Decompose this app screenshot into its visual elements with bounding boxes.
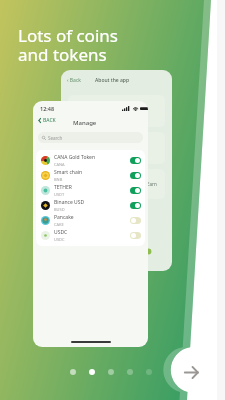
staticText: Manage — [73, 119, 97, 127]
button[interactable] — [130, 187, 141, 194]
button[interactable] — [130, 172, 141, 179]
staticText: 12:48 — [40, 105, 55, 112]
button[interactable]: CANA Gold Token — [36, 153, 145, 168]
staticText: Smart chain — [54, 169, 83, 176]
staticText: USDC — [54, 229, 68, 236]
staticText: Binance USD — [54, 199, 85, 206]
button[interactable] — [130, 157, 141, 164]
button[interactable]: TETHER — [36, 183, 145, 198]
staticText: ‹ Back — [67, 77, 81, 84]
staticText: CANA — [54, 162, 65, 167]
button[interactable]: Next — [171, 352, 211, 392]
button[interactable]: Binance USD — [36, 198, 145, 213]
staticText: CAKE — [54, 222, 64, 227]
button[interactable]: Pancake — [36, 213, 145, 228]
staticText: USDC — [54, 237, 65, 242]
staticText: CANA Gold Token — [54, 154, 96, 161]
button[interactable] — [130, 217, 141, 224]
staticText: Earn — [147, 181, 157, 187]
button[interactable]: Smart chain — [36, 168, 145, 183]
staticText: Lots of coins and tokens — [18, 24, 118, 66]
staticText: BACK — [43, 117, 56, 124]
staticText: USDT — [54, 192, 65, 197]
button[interactable]: USDC — [36, 228, 145, 243]
button[interactable] — [130, 232, 141, 239]
button[interactable]: Search — [38, 132, 143, 143]
staticText: TETHER — [54, 184, 72, 191]
button[interactable] — [130, 202, 141, 209]
button[interactable]: BACK — [38, 117, 148, 124]
staticText: Pancake — [54, 214, 74, 221]
staticText: BUSD — [54, 207, 65, 212]
staticText: BNB — [54, 177, 63, 182]
staticText: Search — [48, 135, 63, 141]
staticText: About the app — [95, 77, 130, 84]
